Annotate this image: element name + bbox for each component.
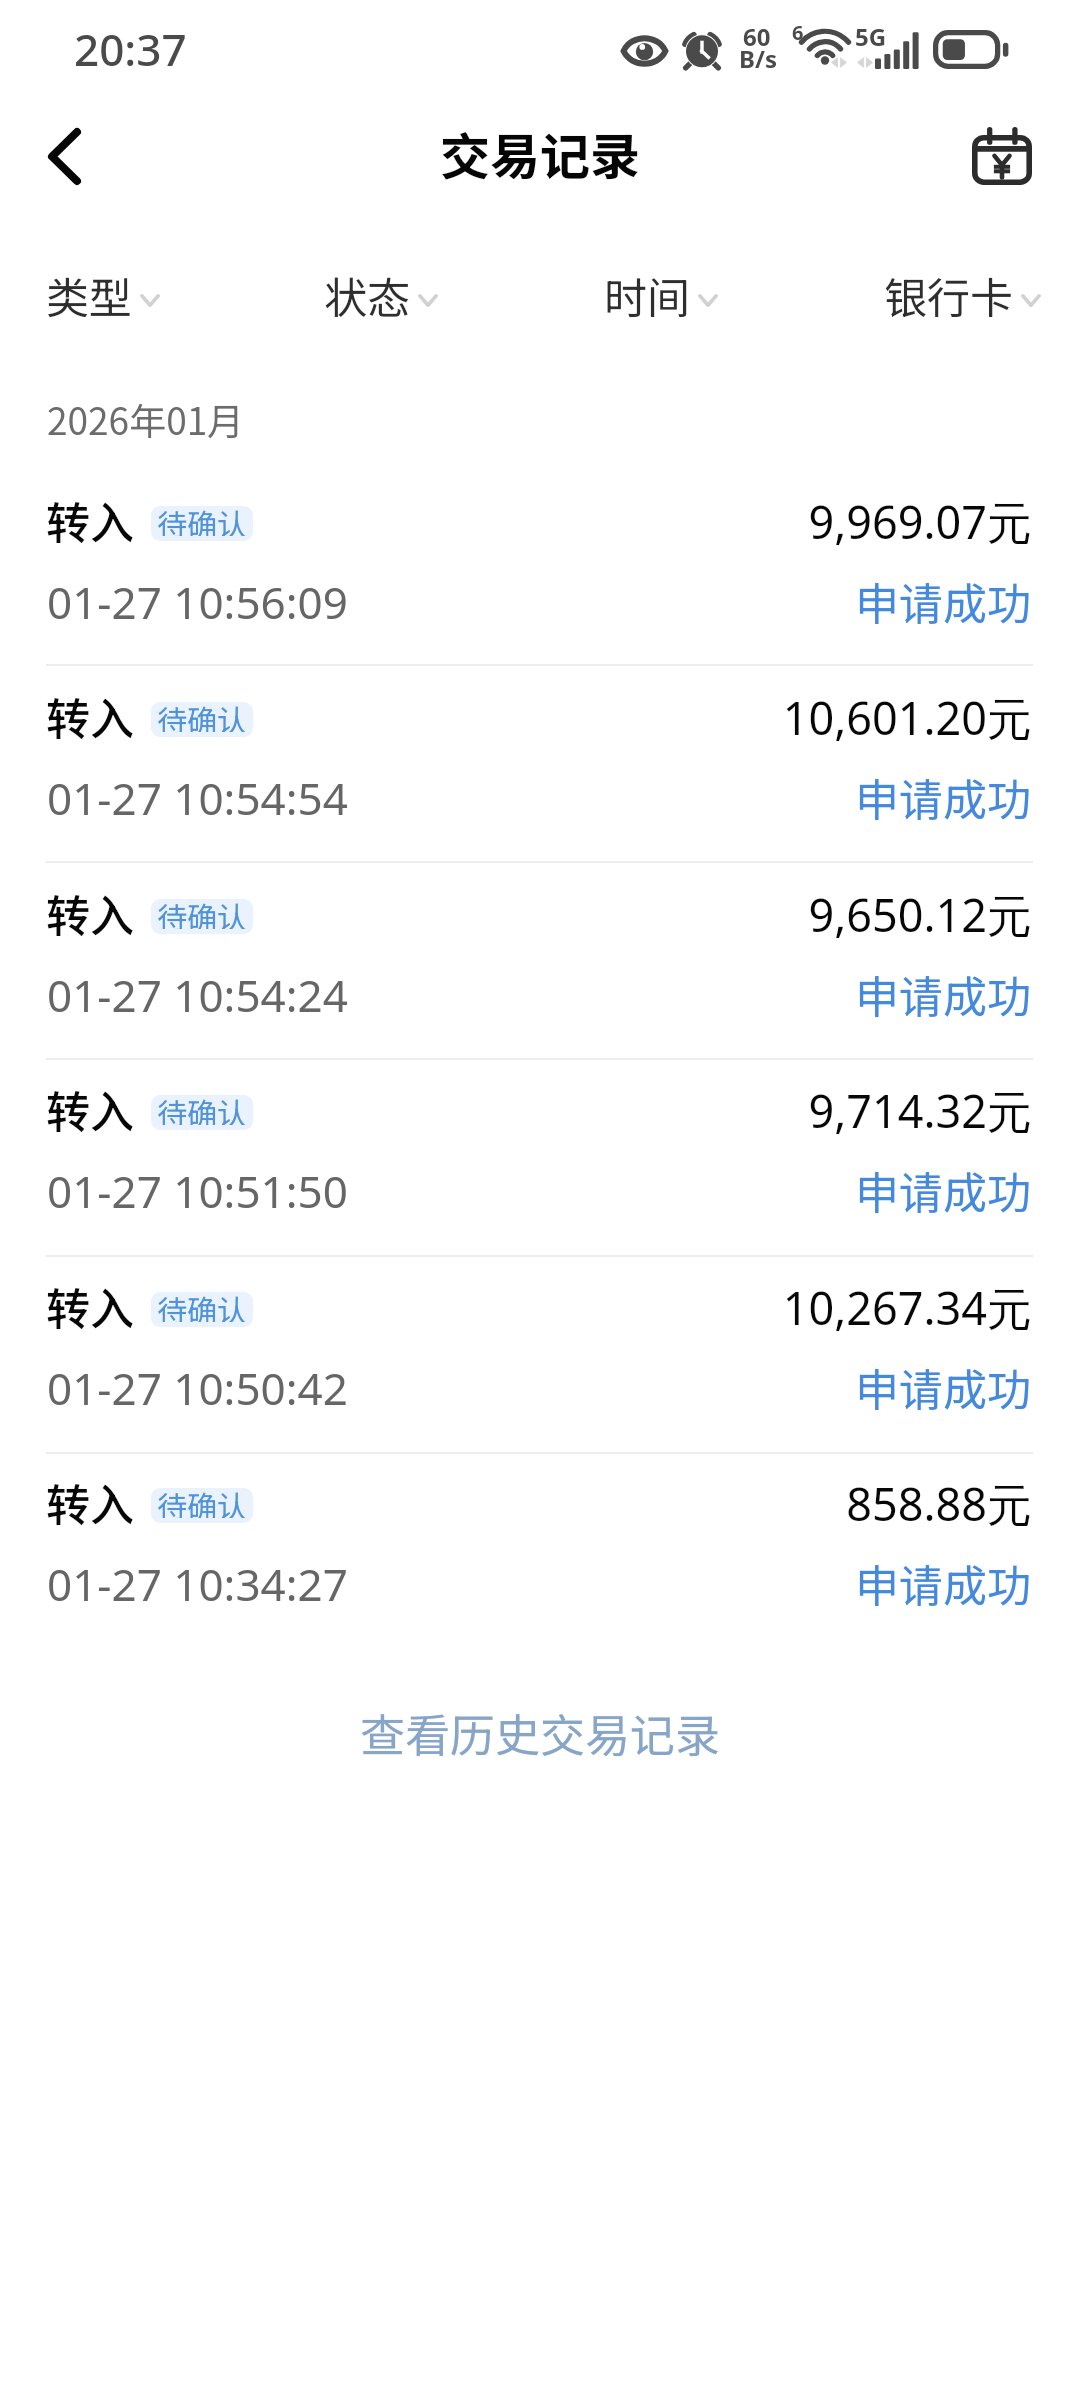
staticText: 申请成功 [0, 962, 1031, 1026]
button[interactable]: 状态 [308, 246, 450, 344]
staticText: 待确认 [157, 506, 247, 536]
staticText: 2026年01月 [47, 392, 245, 446]
button[interactable]: 转入 [0, 462, 1080, 658]
staticText: 9,969.07元 [0, 491, 1032, 552]
button[interactable]: 类型 [30, 246, 172, 344]
staticText: 01-27 10:54:24 [47, 965, 348, 1025]
staticText: 9,714.32元 [0, 1080, 1032, 1141]
staticText: 转入 [46, 684, 134, 748]
button[interactable]: 查看历史交易记录 [320, 1676, 761, 1789]
staticText: 待确认 [157, 702, 247, 732]
staticText: 60 [743, 20, 771, 53]
staticText: 申请成功 [0, 1355, 1031, 1419]
button[interactable]: 转入 [0, 658, 1080, 854]
staticText: 转入 [46, 1274, 134, 1338]
staticText: 类型 [46, 264, 132, 326]
staticText: 待确认 [157, 1292, 247, 1322]
button[interactable]: 转入 [0, 1051, 1080, 1247]
staticText: 20:37 [74, 19, 187, 79]
staticText: 10,601.20元 [0, 687, 1032, 748]
staticText: 申请成功 [0, 1551, 1031, 1615]
button[interactable]: 转入 [0, 1444, 1080, 1640]
staticText: 转入 [46, 1077, 134, 1141]
staticText: 申请成功 [0, 569, 1031, 633]
staticText: 01-27 10:54:54 [47, 768, 348, 828]
staticText: 5G [855, 20, 887, 53]
staticText: 9,650.12元 [0, 884, 1032, 945]
staticText: 01-27 10:51:50 [47, 1161, 348, 1221]
staticText: 6 [792, 19, 804, 46]
staticText: 转入 [46, 881, 134, 945]
staticText: 时间 [604, 264, 690, 326]
staticText: 转入 [46, 1470, 134, 1534]
staticText: 待确认 [157, 1488, 247, 1518]
staticText: 银行卡 [884, 264, 1013, 326]
staticText: 10,267.34元 [0, 1277, 1032, 1338]
button[interactable]: 时间 [588, 246, 730, 344]
staticText: 申请成功 [0, 1158, 1031, 1222]
staticText: 申请成功 [0, 765, 1031, 829]
staticText: 查看历史交易记录 [360, 1700, 721, 1765]
staticText: 01-27 10:50:42 [47, 1358, 348, 1418]
staticText: 状态 [324, 264, 410, 326]
staticText: 858.88元 [0, 1473, 1032, 1534]
button[interactable]: 银行卡 [868, 246, 1054, 344]
button[interactable]: 转入 [0, 855, 1080, 1051]
staticText: 待确认 [157, 1095, 247, 1125]
button[interactable]: Filter by date [946, 112, 1058, 202]
staticText: 交易记录 [440, 117, 640, 189]
staticText: B/s [739, 42, 777, 75]
button[interactable]: Back [8, 100, 120, 212]
button[interactable]: 转入 [0, 1248, 1080, 1444]
staticText: 待确认 [157, 899, 247, 929]
staticText: 01-27 10:34:27 [47, 1554, 348, 1614]
staticText: 01-27 10:56:09 [47, 572, 348, 632]
staticText: 转入 [46, 488, 134, 552]
